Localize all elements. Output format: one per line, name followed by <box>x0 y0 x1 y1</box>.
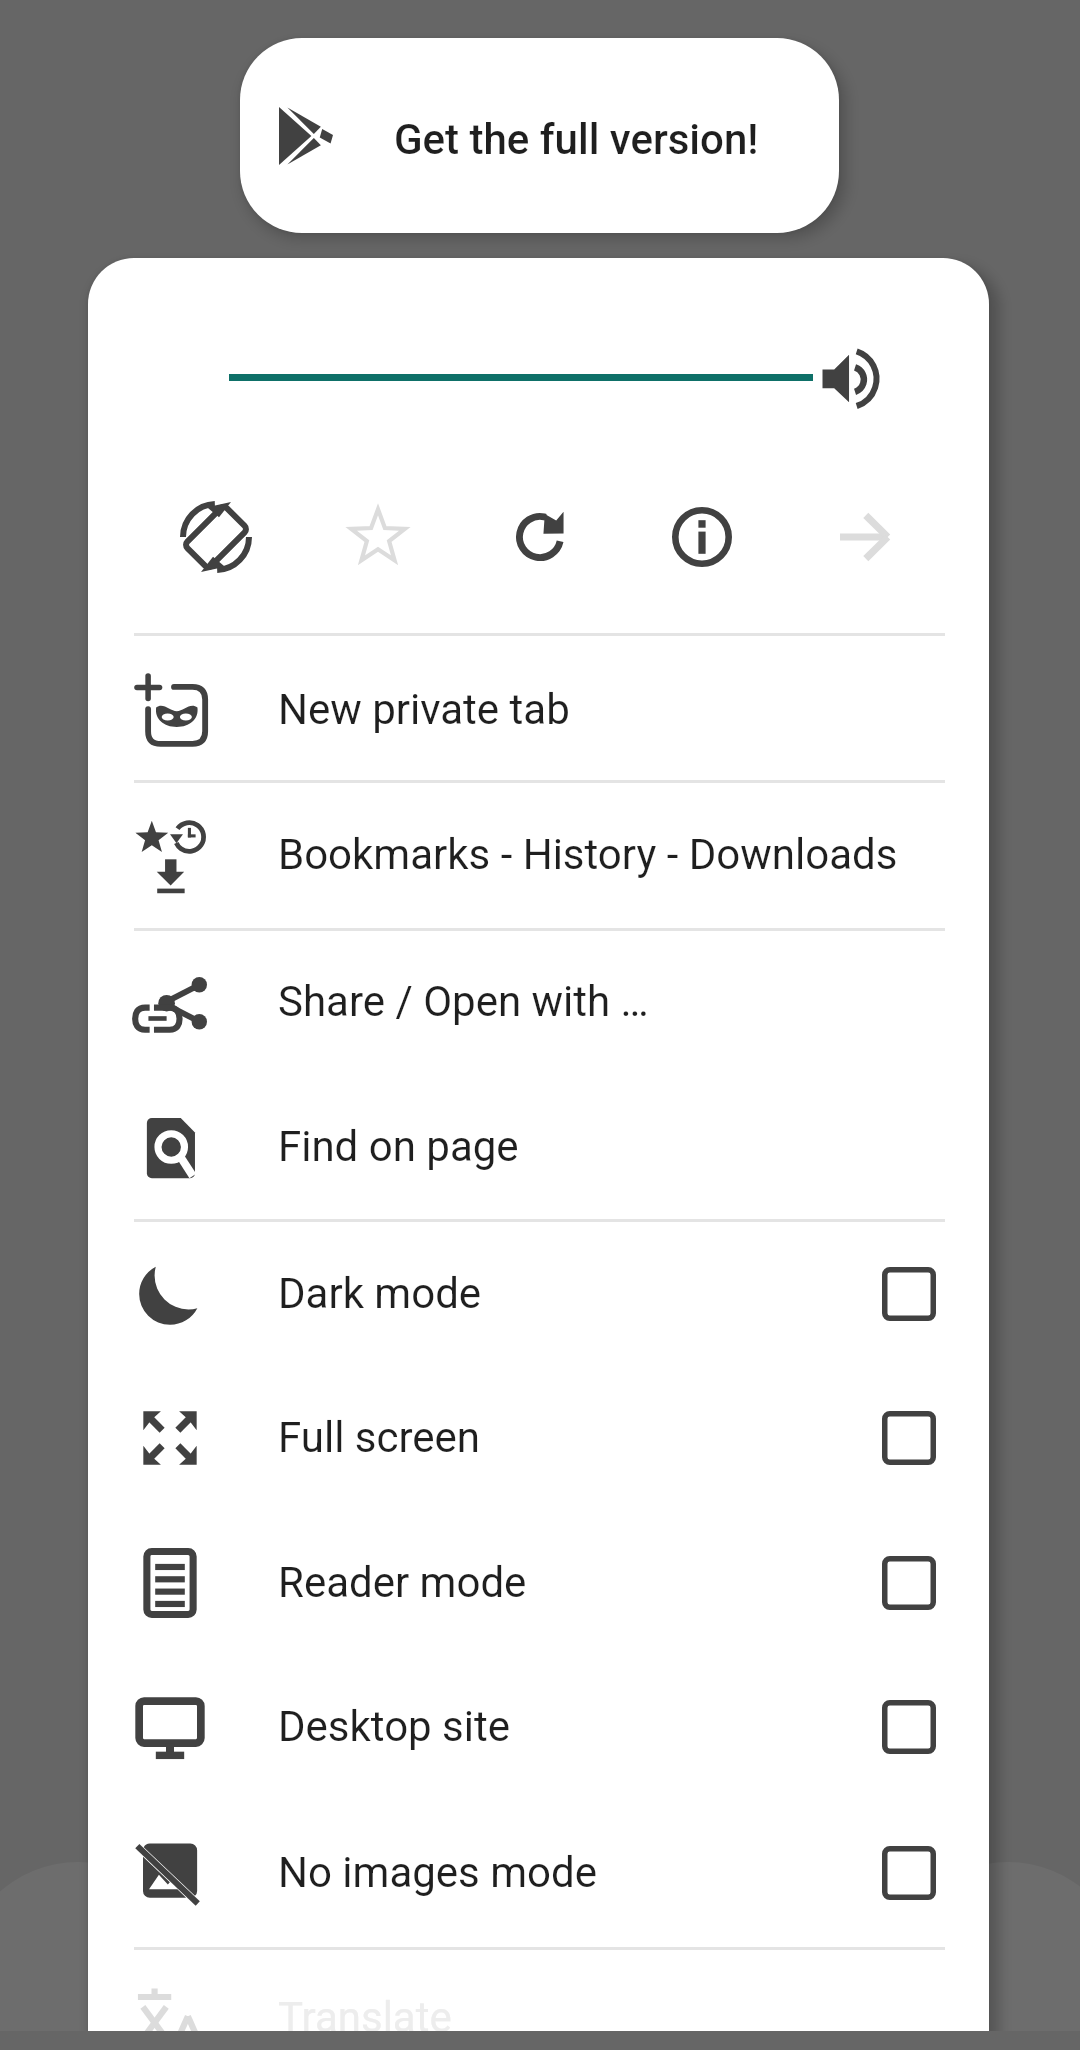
button[interactable]: No images mode <box>88 1800 989 1945</box>
button[interactable]: Share / Open with … <box>88 929 989 1074</box>
staticText: Get the full version! <box>394 115 759 164</box>
staticText: Dark mode <box>278 1269 482 1318</box>
button[interactable]: Find on page <box>88 1074 989 1219</box>
staticText: No images mode <box>278 1848 597 1897</box>
button[interactable]: Translate <box>88 1945 989 2031</box>
staticText: Bookmarks - History - Downloads <box>278 830 898 879</box>
button[interactable]: Add bookmark <box>326 484 430 588</box>
button[interactable]: Get the full version! <box>240 38 839 233</box>
staticText: Desktop site <box>278 1702 510 1751</box>
button[interactable]: Desktop site <box>88 1654 989 1799</box>
button[interactable]: Dark mode <box>88 1221 989 1366</box>
staticText: Share / Open with … <box>278 977 649 1026</box>
button[interactable]: Volume <box>808 337 890 419</box>
button[interactable]: Rotate screen <box>164 485 268 589</box>
button[interactable]: Reload <box>488 485 592 589</box>
staticText: Full screen <box>278 1413 481 1462</box>
button[interactable]: Reader mode <box>88 1510 989 1655</box>
staticText: Find on page <box>278 1122 519 1171</box>
button[interactable]: Bookmarks - History - Downloads <box>88 782 989 927</box>
button[interactable]: Forward <box>812 485 916 589</box>
staticText: Translate <box>278 1993 452 2031</box>
button[interactable]: Page info <box>650 485 754 589</box>
staticText: Reader mode <box>278 1558 527 1607</box>
button[interactable]: Full screen <box>88 1365 989 1510</box>
staticText: New private tab <box>278 685 570 734</box>
button[interactable]: New private tab <box>88 637 989 782</box>
